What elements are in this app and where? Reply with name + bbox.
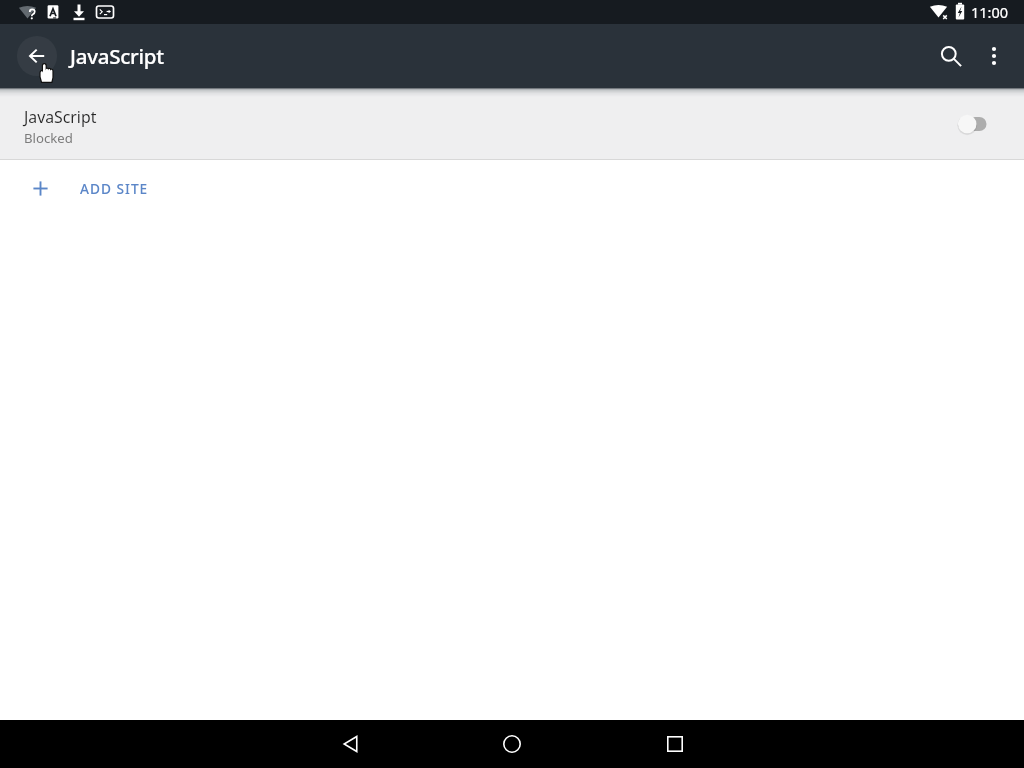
button[interactable]: More options [970, 32, 1018, 80]
button[interactable]: ADD SITE [0, 160, 1024, 216]
button[interactable]: Navigate up [17, 36, 57, 76]
button[interactable]: JavaScript [0, 88, 1024, 160]
button[interactable]: Search [927, 32, 975, 80]
button[interactable]: Back [327, 720, 375, 768]
staticText: JavaScript [70, 42, 164, 70]
staticText: JavaScript [24, 106, 97, 128]
button[interactable]: Home [488, 720, 536, 768]
staticText: ADD SITE [80, 179, 149, 198]
staticText: Blocked [24, 129, 73, 147]
button[interactable]: Recent apps [651, 720, 699, 768]
staticText: 11:00 [971, 2, 1009, 22]
